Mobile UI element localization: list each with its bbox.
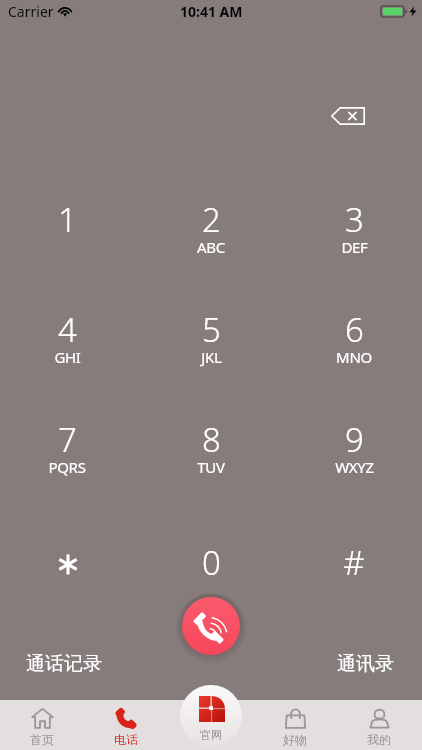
button[interactable]: 通话记录 — [26, 652, 102, 676]
button[interactable]: 1 — [7, 183, 127, 265]
button[interactable]: 7 — [7, 403, 127, 485]
staticText: 0 — [202, 540, 221, 585]
button[interactable]: 官网 — [180, 685, 242, 735]
staticText: 4 — [58, 307, 77, 352]
button[interactable]: 0 — [151, 526, 271, 608]
staticText: 9 — [345, 417, 364, 462]
staticText: JKL — [201, 347, 222, 367]
button[interactable]: 好物 — [263, 700, 327, 750]
button[interactable]: # — [294, 526, 414, 608]
staticText: 10:41 AM — [180, 2, 243, 21]
button[interactable]: 8 — [151, 403, 271, 485]
button[interactable]: 4 — [7, 293, 127, 375]
staticText: 5 — [202, 307, 221, 352]
button[interactable]: 首页 — [10, 700, 74, 750]
staticText: 首页 — [30, 732, 54, 747]
staticText: 通讯录 — [337, 652, 394, 676]
staticText: 通话记录 — [26, 652, 102, 676]
staticText: 8 — [202, 417, 221, 462]
staticText: 1 — [58, 197, 77, 242]
button[interactable]: 通讯录 — [337, 652, 394, 676]
button[interactable]: Call — [182, 597, 240, 655]
staticText: ABC — [197, 237, 225, 257]
staticText: 3 — [345, 197, 364, 242]
staticText: Carrier — [8, 2, 54, 21]
staticText: 7 — [58, 417, 77, 462]
staticText: 2 — [202, 197, 221, 242]
button[interactable]: 9 — [294, 403, 414, 485]
staticText: 电话 — [114, 732, 138, 747]
staticText: MNO — [336, 347, 372, 367]
staticText: # — [343, 540, 365, 585]
staticText: DEF — [341, 237, 368, 257]
button[interactable]: 电话 — [94, 700, 158, 750]
button[interactable]: 2 — [151, 183, 271, 265]
button[interactable]: 我的 — [347, 700, 411, 750]
button[interactable]: 6 — [294, 293, 414, 375]
button[interactable] — [7, 526, 127, 608]
button[interactable]: 3 — [294, 183, 414, 265]
staticText: 6 — [345, 307, 364, 352]
button[interactable]: 5 — [151, 293, 271, 375]
staticText: WXYZ — [335, 457, 374, 477]
staticText: TUV — [197, 457, 225, 477]
staticText: PQRS — [48, 457, 86, 477]
staticText: 好物 — [283, 732, 307, 747]
staticText: GHI — [54, 347, 81, 367]
button[interactable]: Backspace — [325, 94, 371, 137]
staticText: 官网 — [200, 728, 222, 742]
staticText: 我的 — [367, 732, 391, 747]
